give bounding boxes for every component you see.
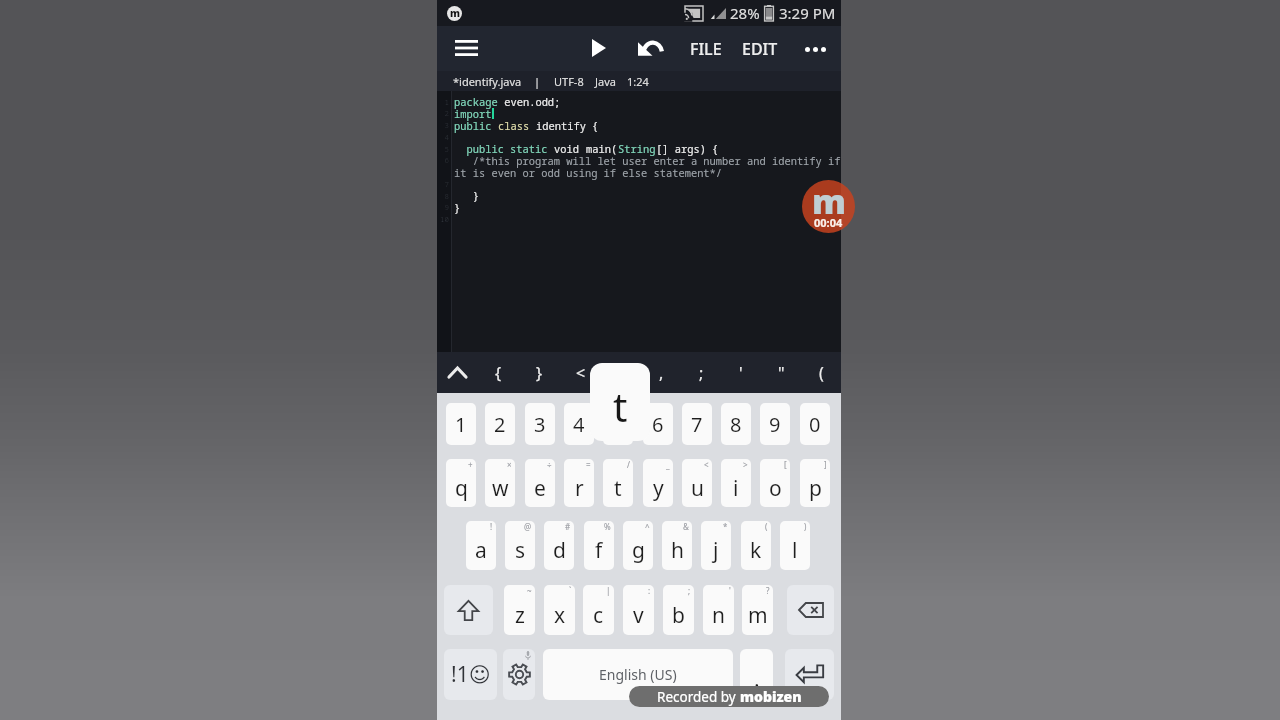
- staticText: [] args) {: [656, 142, 719, 156]
- button[interactable]: 7: [682, 403, 712, 445]
- button[interactable]: Undo: [632, 32, 666, 66]
- button[interactable]: Run: [582, 31, 616, 65]
- staticText: UTF-8: [554, 74, 584, 89]
- button[interactable]: ;: [663, 585, 694, 635]
- other: Collapse: [449, 368, 466, 377]
- button[interactable]: >: [601, 352, 641, 393]
- button[interactable]: ^: [623, 521, 653, 570]
- button[interactable]: [: [760, 459, 790, 507]
- button[interactable]: %: [584, 521, 614, 570]
- staticText: ÷: [547, 459, 552, 470]
- staticText: it is even or odd using if else statemen…: [454, 166, 723, 180]
- staticText: *: [723, 521, 728, 532]
- button[interactable]: Backspace: [787, 585, 834, 635]
- staticText: |: [534, 74, 541, 89]
- staticText: class: [498, 119, 536, 133]
- button[interactable]: >: [721, 459, 751, 507]
- button[interactable]: .: [740, 649, 773, 700]
- button[interactable]: ×: [485, 459, 515, 507]
- button[interactable]: Collapse: [437, 352, 478, 393]
- button[interactable]: (: [741, 521, 771, 570]
- staticText: c: [593, 601, 604, 630]
- staticText: 6: [437, 155, 449, 165]
- button[interactable]: <: [560, 352, 601, 393]
- button[interactable]: +: [446, 459, 476, 507]
- staticText: 1: [437, 97, 449, 107]
- staticText: 2: [437, 108, 449, 118]
- button[interactable]: ': [721, 352, 761, 393]
- button[interactable]: 6: [643, 403, 673, 445]
- button[interactable]: ,: [641, 352, 681, 393]
- button[interactable]: {: [478, 352, 519, 393]
- button[interactable]: ~: [504, 585, 535, 635]
- staticText: y: [653, 474, 664, 503]
- button[interactable]: 2: [485, 403, 515, 445]
- button[interactable]: `: [544, 585, 575, 635]
- staticText: ;: [699, 362, 704, 384]
- button[interactable]: EDIT: [735, 26, 784, 71]
- button[interactable]: ÷: [525, 459, 555, 507]
- button[interactable]: _: [643, 459, 673, 507]
- staticText: public: [454, 119, 498, 133]
- button[interactable]: Menu: [450, 32, 482, 64]
- button[interactable]: (: [801, 352, 841, 393]
- button[interactable]: 1: [446, 403, 476, 445]
- staticText: ): [804, 521, 807, 532]
- staticText: import: [454, 107, 492, 121]
- staticText: 5: [612, 411, 624, 438]
- staticText: m: [812, 180, 846, 224]
- button[interactable]: Enter: [785, 649, 834, 700]
- staticText: public static: [454, 142, 554, 156]
- staticText: /*this program will let user enter a num…: [454, 154, 841, 168]
- staticText: >: [616, 362, 626, 384]
- button[interactable]: 8: [721, 403, 751, 445]
- button[interactable]: /: [603, 459, 633, 507]
- staticText: ': [729, 585, 731, 596]
- button[interactable]: Settings: [503, 649, 535, 700]
- button[interactable]: 5: [603, 403, 633, 445]
- staticText: v: [633, 601, 644, 630]
- button[interactable]: ?: [742, 585, 773, 635]
- button[interactable]: Mobizen recorder: [802, 180, 855, 233]
- button[interactable]: :: [623, 585, 654, 635]
- button[interactable]: <: [682, 459, 712, 507]
- button[interactable]: =: [564, 459, 594, 507]
- staticText: u: [691, 474, 704, 503]
- staticText: <: [704, 459, 709, 470]
- staticText: void: [554, 142, 586, 156]
- button[interactable]: 3: [525, 403, 555, 445]
- staticText: 4: [437, 132, 449, 142]
- button[interactable]: #: [544, 521, 574, 570]
- button[interactable]: 4: [564, 403, 594, 445]
- staticText: |: [606, 585, 611, 596]
- button[interactable]: ': [703, 585, 734, 635]
- button[interactable]: ": [761, 352, 801, 393]
- button[interactable]: ;: [681, 352, 721, 393]
- button[interactable]: 0: [800, 403, 830, 445]
- button[interactable]: &: [662, 521, 692, 570]
- staticText: %: [604, 521, 611, 532]
- button[interactable]: !: [466, 521, 496, 570]
- button[interactable]: Shift: [444, 585, 493, 635]
- staticText: g: [632, 536, 645, 565]
- button[interactable]: *: [701, 521, 731, 570]
- staticText: 9: [437, 202, 449, 212]
- button[interactable]: ]: [800, 459, 830, 507]
- button[interactable]: !1☺: [444, 649, 497, 700]
- staticText: 9: [769, 411, 781, 438]
- staticText: }: [454, 201, 461, 215]
- staticText: EDIT: [742, 38, 778, 60]
- button[interactable]: Mobizen: [447, 6, 462, 21]
- staticText: 6: [652, 411, 664, 438]
- staticText: ]: [824, 459, 827, 470]
- button[interactable]: |: [583, 585, 614, 635]
- staticText: m: [450, 6, 460, 20]
- button[interactable]: More options: [798, 32, 832, 66]
- button[interactable]: 9: [760, 403, 790, 445]
- button[interactable]: English (US): [543, 649, 733, 700]
- button[interactable]: ): [780, 521, 810, 570]
- button[interactable]: @: [505, 521, 535, 570]
- button[interactable]: FILE: [682, 26, 730, 71]
- button[interactable]: }: [519, 352, 560, 393]
- staticText: h: [671, 536, 684, 565]
